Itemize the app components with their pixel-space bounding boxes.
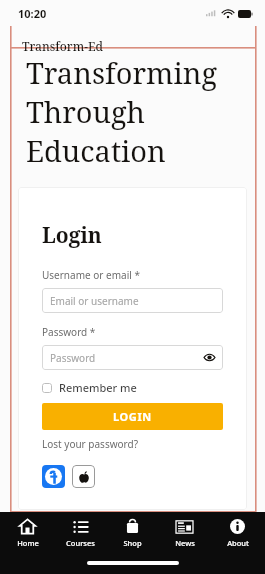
button[interactable]: Transform-Ed: [0, 26, 265, 47]
staticText: Through: [26, 92, 146, 131]
staticText: Courses: [66, 538, 95, 548]
button[interactable]: Remember me: [42, 380, 137, 395]
staticText: 10:20: [18, 6, 47, 21]
staticText: Home: [17, 538, 39, 548]
button[interactable]: Shop: [108, 517, 157, 548]
staticText: Education: [26, 131, 166, 170]
staticText: Email or username: [50, 294, 139, 308]
staticText: Login: [42, 221, 102, 250]
button[interactable]: Lost your password?: [42, 437, 139, 451]
staticText: Transforming: [26, 53, 218, 92]
staticText: Password *: [42, 325, 96, 339]
staticText: Lost your password?: [42, 437, 139, 451]
button[interactable]: Show password: [203, 351, 216, 364]
staticText: Username or email *: [42, 268, 140, 282]
staticText: LOGIN: [113, 409, 152, 424]
button[interactable]: Password: [42, 345, 223, 370]
button[interactable]: Sign in with Facebook: [42, 465, 65, 488]
button[interactable]: News: [160, 517, 209, 548]
staticText: Shop: [123, 538, 142, 548]
button[interactable]: Home: [3, 517, 52, 548]
button[interactable]: Courses: [56, 517, 105, 548]
button[interactable]: Sign in with Apple: [72, 465, 95, 488]
staticText: Transform-Ed: [22, 38, 103, 54]
button[interactable]: Email or username: [42, 288, 223, 313]
staticText: About: [227, 538, 249, 548]
button[interactable]: LOGIN: [42, 403, 223, 430]
staticText: Password: [50, 351, 96, 365]
button[interactable]: About: [213, 517, 262, 548]
staticText: Remember me: [59, 380, 137, 395]
staticText: News: [175, 538, 195, 548]
